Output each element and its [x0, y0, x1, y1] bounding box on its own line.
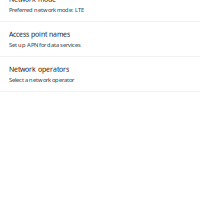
staticText: Preferred network mode: LTE — [9, 6, 84, 14]
button[interactable]: Network operators — [0, 57, 200, 91]
staticText: Select a network operator — [9, 76, 74, 84]
staticText: Network mode — [9, 0, 56, 4]
button[interactable]: Access point names — [0, 22, 200, 56]
staticText: Set up APN for data services — [9, 41, 81, 49]
button[interactable]: Network mode — [0, 0, 200, 21]
staticText: Network operators — [9, 64, 69, 74]
staticText: Access point names — [9, 29, 70, 39]
